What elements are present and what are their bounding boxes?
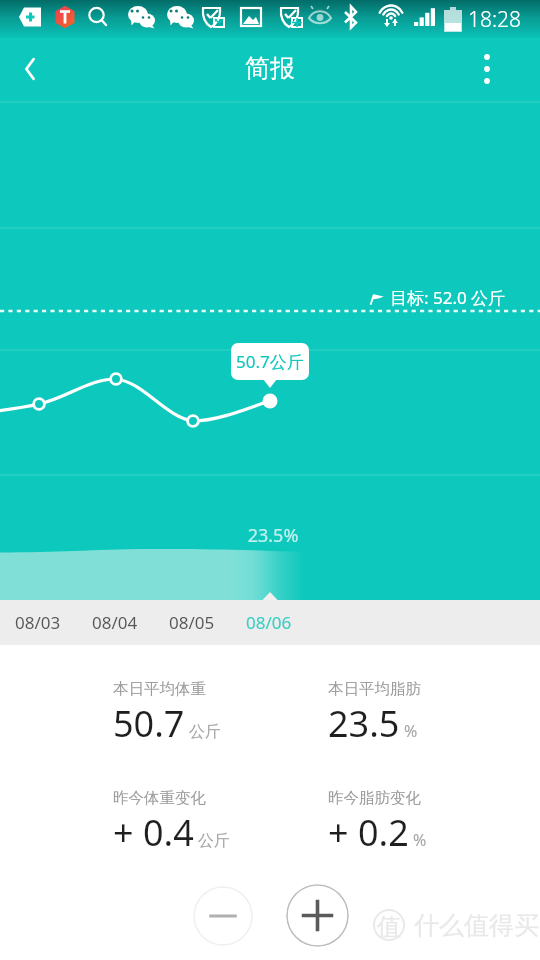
staticText: + 0.4: [113, 808, 194, 857]
staticText: 昨今体重变化: [113, 788, 206, 808]
staticText: %: [413, 829, 427, 851]
staticText: + 0.2: [328, 808, 409, 857]
staticText: 简报: [245, 53, 295, 84]
staticText: 目标: 52.0 公斤: [390, 286, 506, 309]
staticText: 公斤: [189, 722, 221, 742]
button[interactable]: Increase: [286, 884, 349, 947]
button[interactable]: Decrease: [193, 886, 253, 946]
button[interactable]: 08/06: [233, 600, 305, 645]
staticText: 23.5%: [3, 523, 540, 548]
staticText: 值: [377, 912, 401, 942]
staticText: 08/03: [15, 611, 61, 634]
staticText: 什么值得买: [414, 910, 539, 941]
staticText: 08/06: [246, 611, 292, 634]
staticText: 公斤: [198, 831, 230, 851]
staticText: %: [404, 720, 418, 742]
button[interactable]: 08/04: [79, 600, 151, 645]
staticText: 23.5: [328, 699, 400, 748]
staticText: 本日平均体重: [113, 679, 206, 699]
button[interactable]: Back: [0, 38, 60, 99]
staticText: 18:28: [468, 5, 522, 34]
staticText: 本日平均脂肪: [328, 679, 421, 699]
button[interactable]: 08/05: [156, 600, 228, 645]
button[interactable]: 08/03: [2, 600, 74, 645]
staticText: 昨今脂肪变化: [328, 788, 421, 808]
staticText: 50.7: [113, 699, 185, 748]
staticText: 50.7公斤: [236, 350, 304, 373]
staticText: 08/05: [169, 611, 215, 634]
button[interactable]: More options: [457, 38, 517, 99]
staticText: 08/04: [92, 611, 138, 634]
